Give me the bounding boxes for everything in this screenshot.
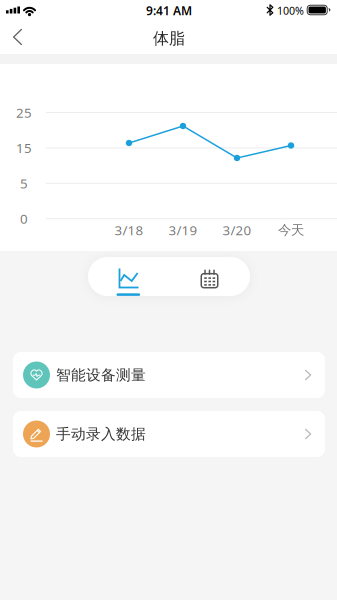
staticText: 手动录入数据 xyxy=(56,425,146,443)
staticText: 3/20 xyxy=(222,221,251,239)
staticText: 0 xyxy=(20,210,28,227)
button[interactable]: 手动录入数据 xyxy=(13,411,325,457)
staticText: 今天 xyxy=(278,222,304,238)
button[interactable] xyxy=(169,257,250,296)
staticText: 3/19 xyxy=(168,221,197,239)
button[interactable] xyxy=(88,257,169,296)
staticText: 100% xyxy=(277,3,304,18)
staticText: 5 xyxy=(20,174,28,192)
staticText: 9:41 AM xyxy=(146,2,192,18)
button[interactable]: 智能设备测量 xyxy=(13,352,325,398)
staticText: 体脂 xyxy=(153,29,185,48)
staticText: 智能设备测量 xyxy=(56,366,146,384)
staticText: 3/18 xyxy=(114,221,143,239)
button[interactable] xyxy=(0,20,34,54)
staticText: 15 xyxy=(16,139,32,157)
staticText: 25 xyxy=(16,104,32,121)
